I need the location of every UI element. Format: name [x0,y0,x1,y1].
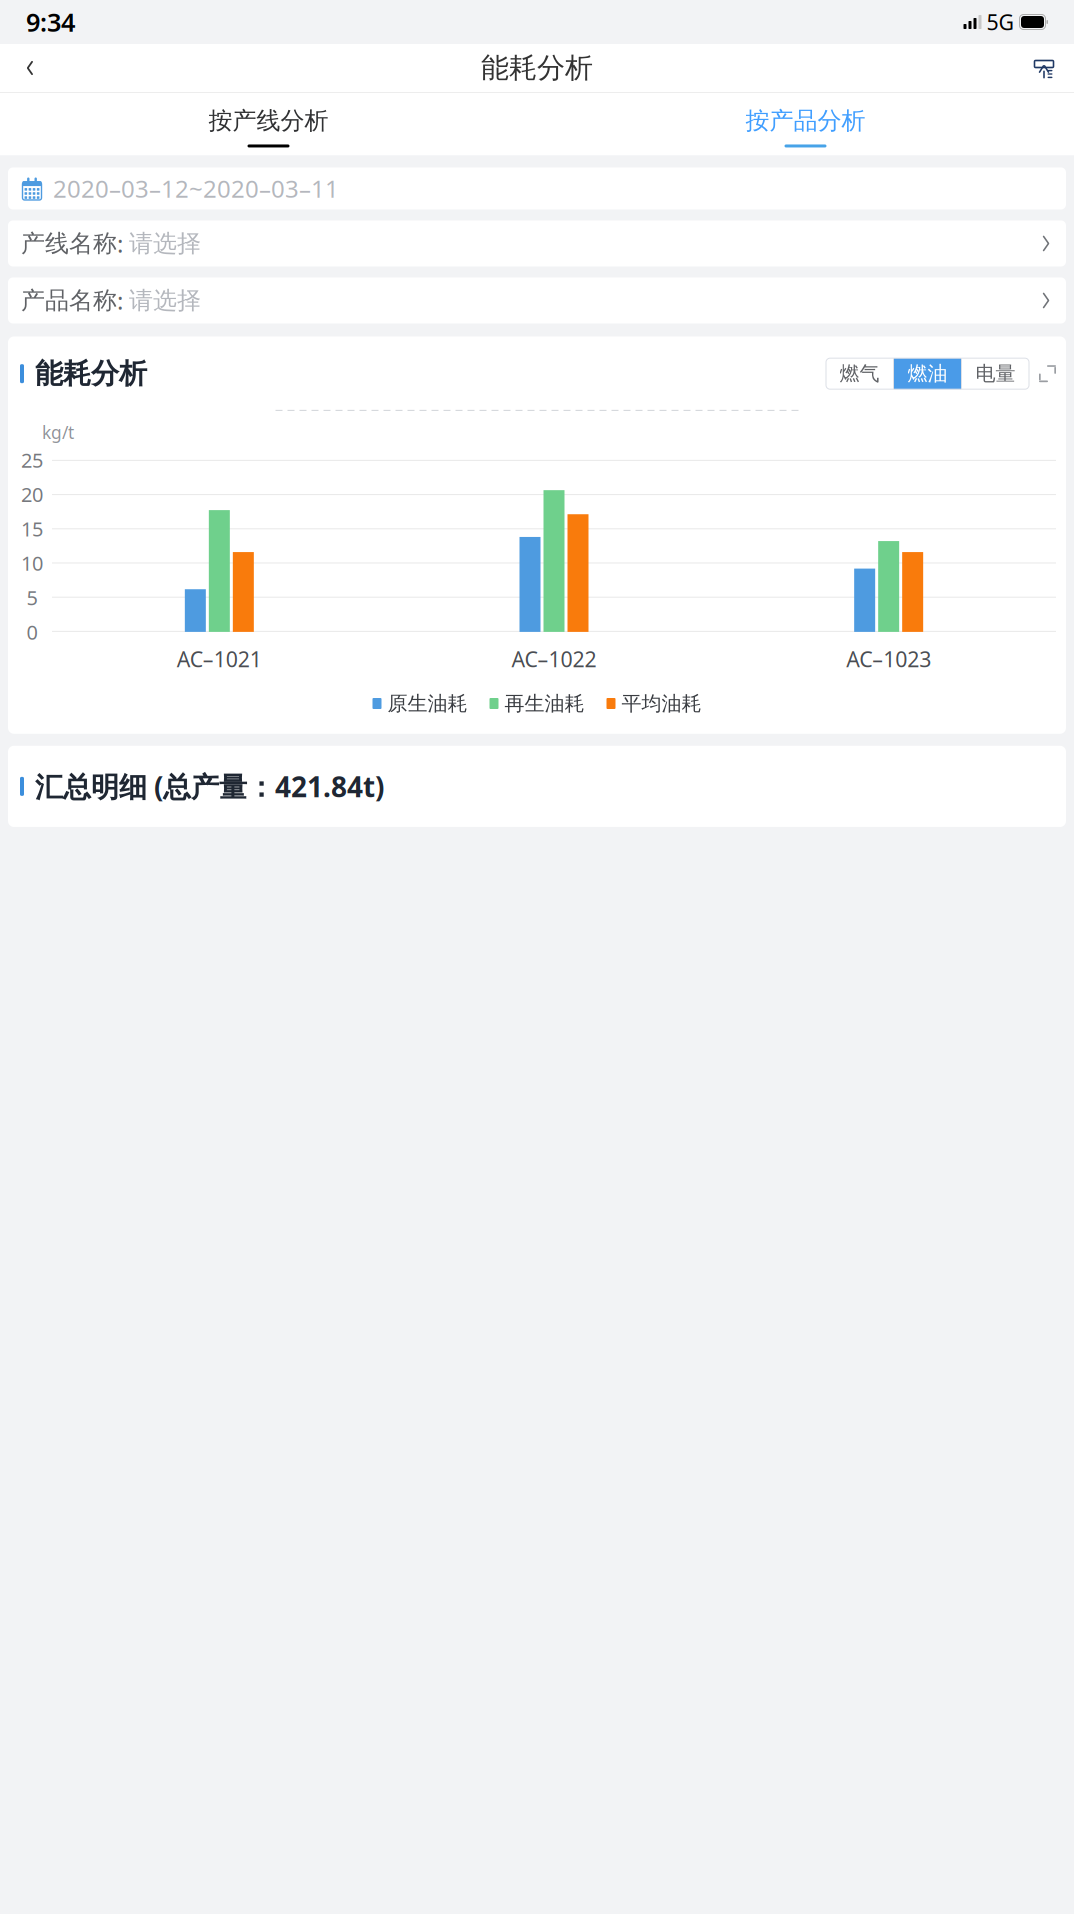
button[interactable]: 按产品分析 [537,92,1074,155]
staticText: 电量 [975,361,1015,386]
button[interactable]: 电量 [962,358,1029,389]
staticText: 原生油耗 [387,691,467,716]
button[interactable]: 燃油 [894,358,961,389]
staticText: AC–1023 [846,645,931,673]
staticText: : [117,284,129,316]
button[interactable]: 按产线分析 [0,92,537,155]
staticText: 请选择 [129,229,201,258]
staticText: 5G [986,8,1014,36]
staticText: 2020–03–12~2020–03–11 [53,172,339,204]
staticText: kg/t [42,421,74,444]
staticText: : [117,227,129,259]
button[interactable]: Fullscreen [1029,359,1056,388]
staticText: 10 [21,550,43,576]
staticText: AC–1021 [177,645,262,673]
staticText: 0 [26,619,37,645]
staticText: 15 [21,515,43,542]
button[interactable]: Back [8,46,52,90]
staticText: 平均油耗 [621,691,701,716]
staticText: 产品名称 [21,286,117,315]
button[interactable]: Filter [1022,46,1066,90]
staticText: 产线名称 [21,229,117,258]
button[interactable]: 产线名称 [8,220,1066,266]
button[interactable]: 产品名称 [8,277,1066,323]
staticText: 请选择 [129,286,201,315]
staticText: 汇总明细 (总产量：421.84t) [35,768,384,805]
staticText: 按产线分析 [208,106,328,135]
button[interactable]: 燃气 [826,358,893,389]
staticText: 20 [21,481,43,508]
button[interactable]: 2020–03–12~2020–03–11 [8,167,1066,209]
staticText: AC–1022 [511,645,596,673]
staticText: 燃油 [907,361,947,386]
staticText: 再生油耗 [504,691,584,716]
staticText: 25 [21,447,43,473]
staticText: 5 [26,584,37,611]
staticText: 能耗分析 [35,356,147,391]
staticText: 按产品分析 [745,106,865,135]
staticText: 燃气 [839,361,879,386]
staticText: 能耗分析 [481,51,593,85]
staticText: 9:34 [26,5,75,39]
